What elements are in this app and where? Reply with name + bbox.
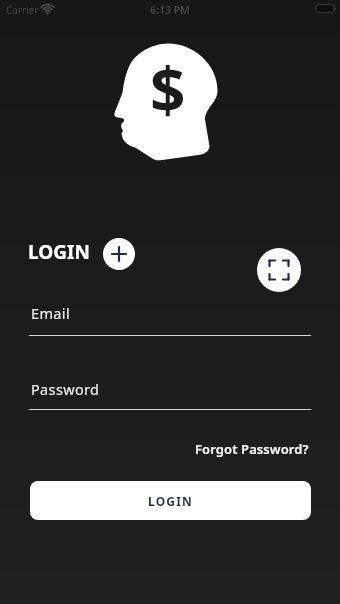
button[interactable]: [103, 238, 135, 270]
staticText: LOGIN: [148, 493, 194, 509]
staticText: $: [150, 47, 186, 131]
staticText: Email: [31, 303, 70, 323]
button[interactable]: Forgot Password?: [195, 440, 309, 458]
button[interactable]: Password: [0, 376, 340, 416]
staticText: 6:13 PM: [150, 3, 190, 17]
staticText: LOGIN: [28, 239, 90, 265]
staticText: Carrier: [6, 3, 39, 17]
button[interactable]: LOGIN: [30, 481, 311, 520]
button[interactable]: [257, 248, 301, 292]
staticText: Password: [31, 379, 100, 399]
button[interactable]: Email: [0, 300, 340, 340]
